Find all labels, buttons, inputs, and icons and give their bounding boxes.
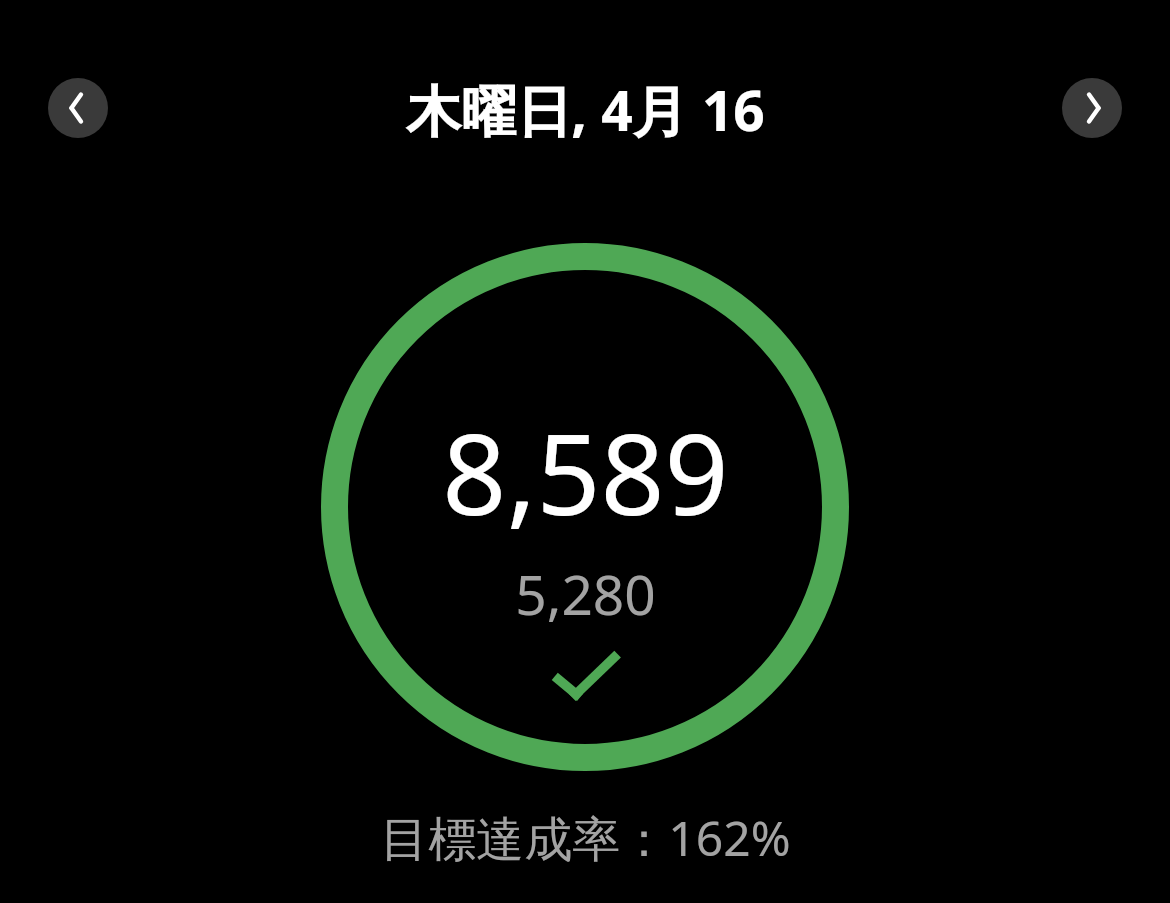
button[interactable]: Next day bbox=[1062, 78, 1122, 138]
staticText: 目標達成率：162% bbox=[380, 805, 791, 871]
staticText: 木曜日, 4月 16 bbox=[406, 72, 765, 147]
button[interactable]: Previous day bbox=[48, 78, 108, 138]
staticText: 8,589 bbox=[442, 395, 729, 548]
staticText: 5,280 bbox=[515, 556, 656, 631]
